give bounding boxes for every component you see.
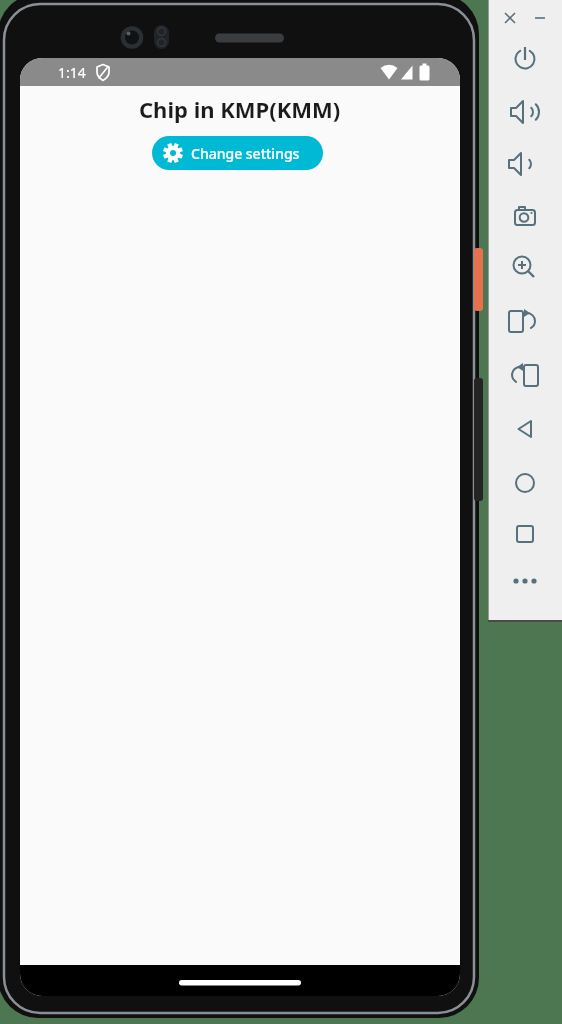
button[interactable] (503, 559, 547, 603)
button[interactable] (503, 353, 547, 397)
staticText: 1:14 (58, 63, 86, 82)
button[interactable] (503, 142, 547, 186)
button[interactable] (503, 36, 547, 80)
button[interactable] (503, 246, 547, 290)
button[interactable] (503, 407, 547, 451)
staticText: Chip in KMP(KMM) (139, 94, 341, 124)
staticText: Change settings (191, 144, 300, 163)
button[interactable]: Change settings (152, 136, 323, 170)
button[interactable] (503, 461, 547, 505)
button[interactable] (503, 299, 547, 343)
button[interactable] (503, 195, 547, 239)
button[interactable] (503, 512, 547, 556)
button[interactable] (503, 90, 547, 134)
